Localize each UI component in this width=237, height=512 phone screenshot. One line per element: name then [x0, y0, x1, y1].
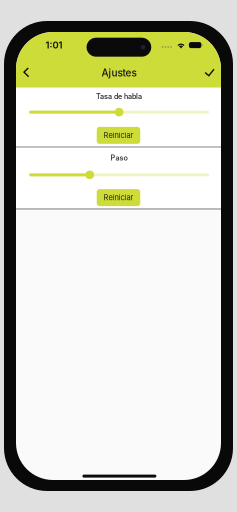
button[interactable]: Back: [14, 61, 38, 85]
button[interactable]: Reiniciar: [97, 127, 140, 144]
staticText: Tasa de habla: [96, 92, 142, 101]
button[interactable]: Done: [199, 61, 223, 85]
button[interactable]: Reiniciar: [97, 189, 140, 206]
staticText: Reiniciar: [103, 193, 133, 202]
staticText: Ajustes: [101, 67, 136, 79]
staticText: Reiniciar: [103, 131, 133, 140]
staticText: 1:01: [45, 39, 62, 51]
staticText: Paso: [110, 153, 127, 162]
